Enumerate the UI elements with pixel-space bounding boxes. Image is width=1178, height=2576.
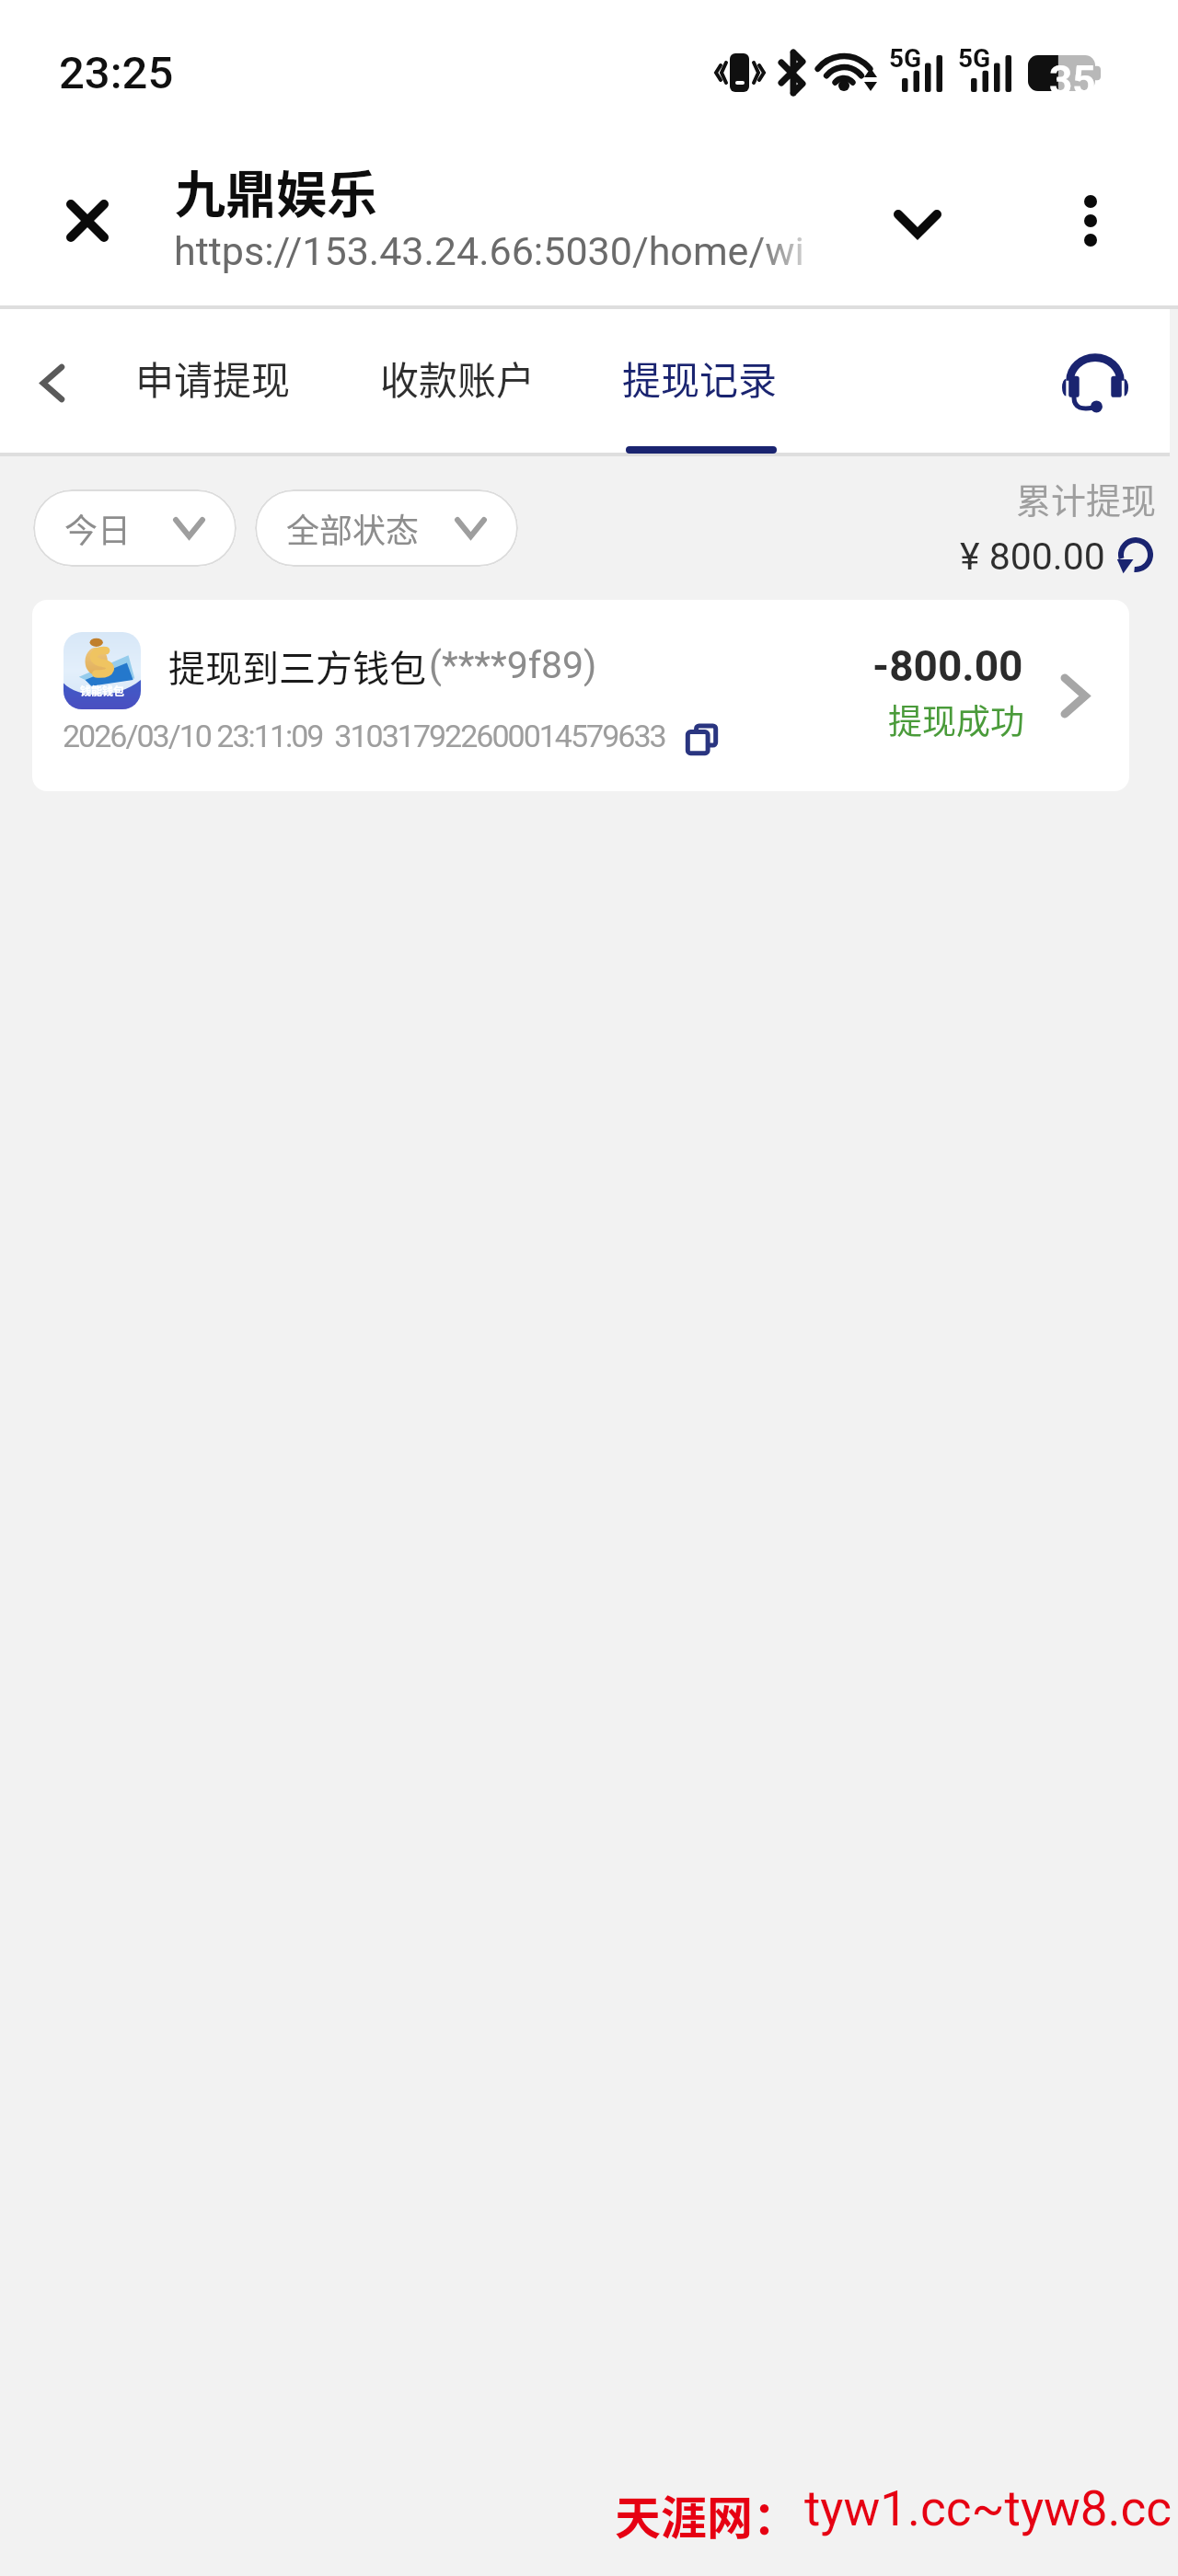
button[interactable]: Refresh xyxy=(1116,535,1155,574)
staticText: 申请提现 xyxy=(135,350,291,406)
button[interactable]: 收款账户 xyxy=(356,309,560,456)
staticText: 5G xyxy=(958,43,991,74)
staticText: tyw1.cc~tyw8.cc xyxy=(804,2480,1172,2537)
staticText: 天涯网： xyxy=(615,2481,799,2547)
staticText: 提现成功 xyxy=(888,695,1024,744)
button[interactable]: 申请提现 xyxy=(111,309,315,456)
button[interactable]: Back xyxy=(11,341,94,424)
staticText: 累计提现 xyxy=(1016,473,1157,523)
staticText: 九鼎娱乐 xyxy=(175,154,378,227)
staticText: 钱能钱包 xyxy=(80,683,125,698)
staticText: 今日 xyxy=(64,504,132,552)
staticText: 提现到三方钱包 xyxy=(168,639,426,693)
staticText: 收款账户 xyxy=(380,350,536,406)
button[interactable]: Customer service xyxy=(1058,346,1132,420)
staticText: 2026/03/10 23:11:09 31031792260001457963… xyxy=(63,718,665,754)
button[interactable]: 提现记录 xyxy=(598,309,802,456)
staticText: -800.00 xyxy=(872,641,1023,691)
button[interactable]: 今日 xyxy=(33,489,237,567)
button[interactable]: Close xyxy=(41,175,133,267)
staticText: ¥ 800.00 xyxy=(960,535,1105,579)
staticText: 35 xyxy=(1049,57,1096,105)
button[interactable]: More options xyxy=(1049,179,1132,262)
button[interactable]: 全部状态 xyxy=(255,489,518,567)
staticText: 提现记录 xyxy=(622,350,778,406)
staticText: 23:25 xyxy=(59,47,174,99)
staticText: 5G xyxy=(889,43,922,74)
staticText: (****9f89) xyxy=(429,643,597,687)
button[interactable]: Copy order number xyxy=(687,724,717,754)
staticText: 全部状态 xyxy=(286,504,420,552)
button[interactable]: Expand xyxy=(872,178,964,270)
button[interactable]: 钱能钱包 xyxy=(32,600,1129,791)
staticText: https://153.43.24.66:5030/home/wi xyxy=(174,228,804,274)
